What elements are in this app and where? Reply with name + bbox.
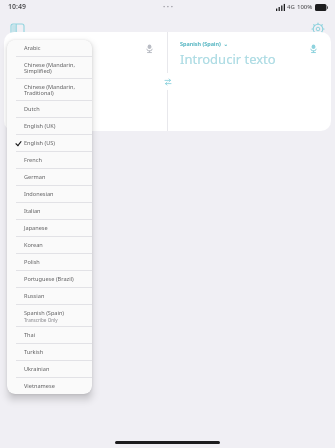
staticText: Turkish <box>24 348 44 356</box>
staticText: Ukrainian <box>24 365 50 373</box>
staticText: Polish <box>24 258 40 266</box>
staticText: Transcribe Only <box>24 317 58 323</box>
button[interactable]: German <box>7 169 92 185</box>
staticText: Indonesian <box>24 190 54 198</box>
button[interactable]: Turkish <box>7 344 92 360</box>
staticText: Japanese <box>24 224 48 232</box>
staticText: Thai <box>24 331 36 339</box>
staticText: • • • <box>163 3 173 11</box>
button[interactable]: Spanish (Spain) ⌄ <box>180 40 229 47</box>
staticText: Italian <box>24 207 41 215</box>
button[interactable]: Japanese <box>7 220 92 236</box>
button[interactable]: Chinese (Mandarin, Simplified) <box>7 57 92 78</box>
button[interactable]: Dutch <box>7 101 92 117</box>
staticText: Vietnamese <box>24 382 55 390</box>
staticText: 4G <box>287 3 295 11</box>
button[interactable]: English (US) ⌄ <box>14 40 53 47</box>
button[interactable]: Korean <box>7 237 92 253</box>
staticText: 10:49 <box>8 2 26 12</box>
staticText: Introducir texto <box>180 50 276 68</box>
button[interactable]: Ukrainian <box>7 361 92 377</box>
staticText: Chinese (Mandarin, Traditional) <box>24 83 75 97</box>
staticText: English (US) <box>24 139 56 147</box>
button[interactable]: English (UK) <box>7 118 92 134</box>
staticText: Dutch <box>24 105 40 113</box>
button[interactable]: Swap languages <box>159 73 176 90</box>
button[interactable]: Spanish (Spain) <box>7 305 92 326</box>
staticText: French <box>24 156 42 164</box>
staticText: 100% <box>297 3 313 11</box>
staticText: Russian <box>24 292 45 300</box>
staticText: Portuguese (Brazil) <box>24 275 74 283</box>
button[interactable]: Microphone <box>141 40 157 56</box>
staticText: English (UK) <box>24 122 56 130</box>
button[interactable]: Thai <box>7 327 92 343</box>
button[interactable]: Russian <box>7 288 92 304</box>
staticText: Korean <box>24 241 43 249</box>
button[interactable]: Chinese (Mandarin, Traditional) <box>7 79 92 100</box>
button[interactable]: Arabic <box>7 40 92 56</box>
staticText: Enter text <box>14 50 74 68</box>
button[interactable]: Microphone <box>305 40 321 56</box>
staticText: Chinese (Mandarin, Simplified) <box>24 61 75 75</box>
staticText: Arabic <box>24 44 41 52</box>
button[interactable]: Indonesian <box>7 186 92 202</box>
staticText: German <box>24 173 46 181</box>
button[interactable]: French <box>7 152 92 168</box>
button[interactable]: Portuguese (Brazil) <box>7 271 92 287</box>
button[interactable]: Settings <box>307 18 329 40</box>
button[interactable]: English (US) <box>7 135 92 151</box>
staticText: Spanish (Spain) <box>24 309 65 317</box>
button[interactable]: Vietnamese <box>7 378 92 394</box>
button[interactable]: Italian <box>7 203 92 219</box>
button[interactable]: Toggle sidebar <box>6 18 28 40</box>
button[interactable]: Polish <box>7 254 92 270</box>
